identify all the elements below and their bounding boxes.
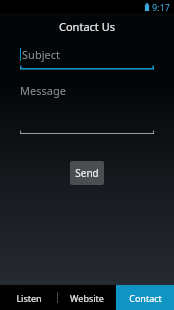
staticText: Contact [129, 292, 162, 304]
staticText: Message [20, 83, 66, 98]
button[interactable]: Contact [116, 285, 174, 310]
staticText: Contact Us [59, 19, 115, 34]
button[interactable]: Listen [0, 285, 58, 310]
button[interactable]: Send [70, 161, 104, 185]
staticText: Website [70, 292, 104, 304]
staticText: Subject [22, 47, 60, 62]
button[interactable]: Subject [20, 39, 154, 70]
staticText: Listen [16, 292, 42, 304]
staticText: 9:17 [152, 1, 170, 13]
button[interactable]: Message [20, 79, 154, 135]
button[interactable]: Website [58, 285, 116, 310]
staticText: Send [75, 166, 99, 180]
